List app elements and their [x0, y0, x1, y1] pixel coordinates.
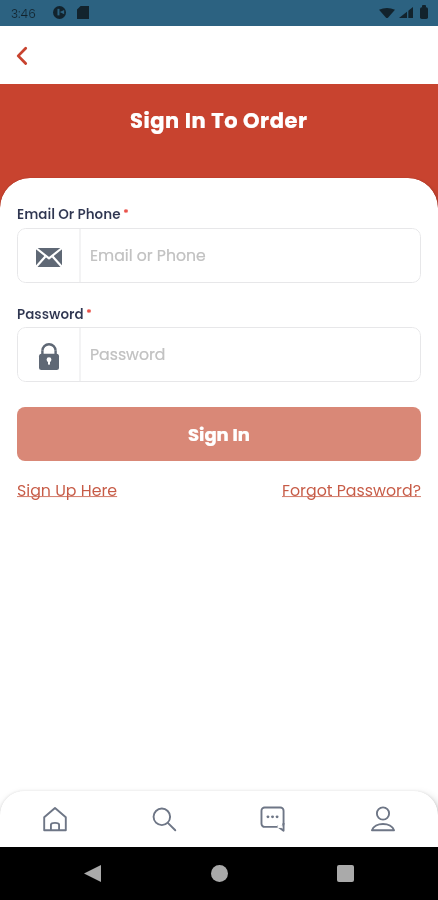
- staticText: Password: [17, 305, 84, 324]
- staticText: 3:46: [11, 5, 36, 22]
- staticText: Email or Phone: [90, 245, 206, 267]
- staticText: Sign In: [188, 422, 250, 447]
- button[interactable]: Messages: [218, 791, 328, 847]
- button[interactable]: Back: [6, 39, 38, 71]
- staticText: Password: [90, 344, 166, 366]
- staticText: Sign Up Here: [17, 479, 118, 501]
- staticText: Forgot Password?: [282, 479, 421, 501]
- staticText: Sign In To Order: [130, 106, 308, 135]
- staticText: *: [86, 305, 92, 320]
- button[interactable]: Sign Up Here: [17, 479, 118, 501]
- button[interactable]: Home: [0, 791, 109, 847]
- button[interactable]: Email or Phone: [17, 228, 421, 283]
- button[interactable]: Search: [109, 791, 218, 847]
- button[interactable]: Forgot Password?: [282, 479, 421, 501]
- button[interactable]: Profile: [328, 791, 438, 847]
- staticText: *: [123, 205, 129, 220]
- button[interactable]: Sign In: [17, 407, 421, 461]
- staticText: Email Or Phone: [17, 205, 121, 224]
- button[interactable]: Password: [17, 327, 421, 382]
